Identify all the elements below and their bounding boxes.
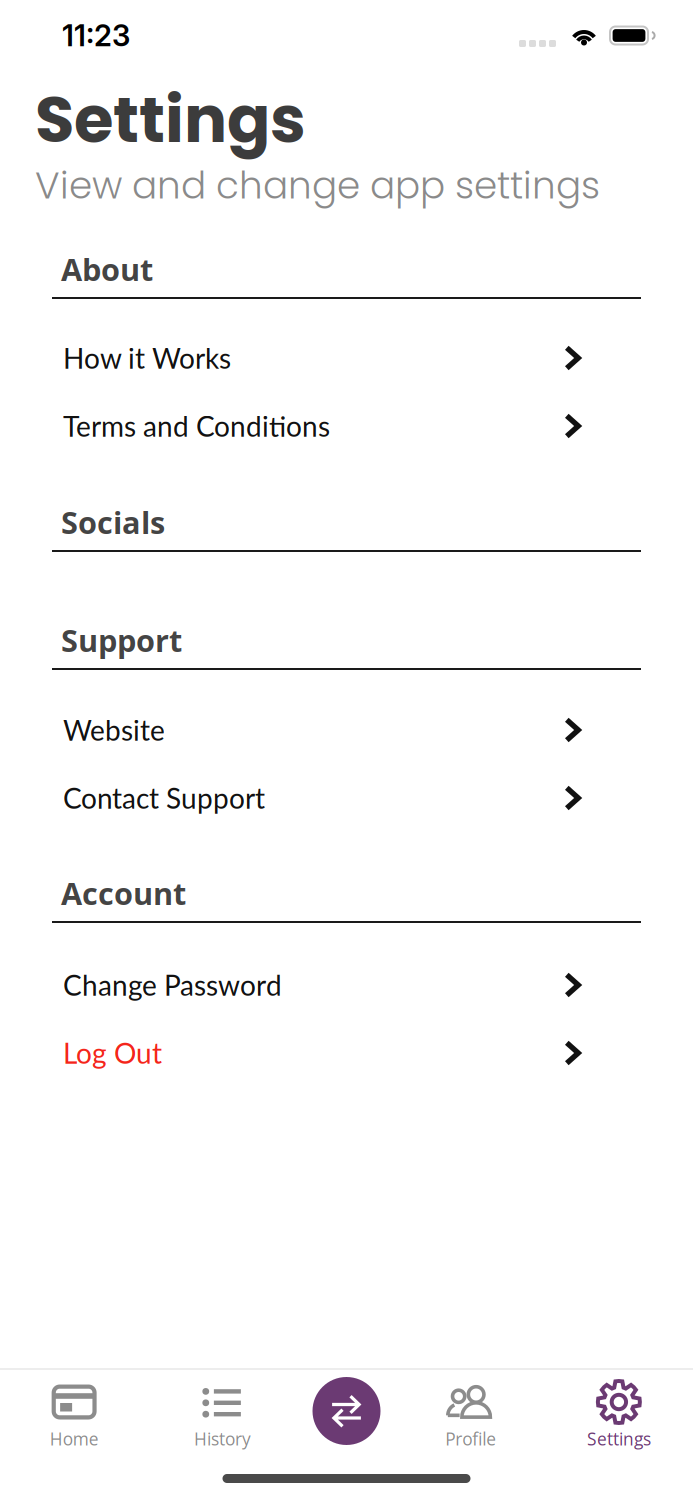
staticText: Profile — [445, 1427, 496, 1451]
button[interactable]: Change Password — [52, 951, 641, 1019]
staticText: History — [194, 1427, 251, 1451]
button[interactable]: History — [148, 1370, 296, 1452]
button[interactable]: How it Works — [52, 324, 641, 392]
staticText: 11:23 — [62, 18, 130, 53]
staticText: Change Password — [63, 968, 282, 1002]
button[interactable]: Terms and Conditions — [52, 392, 641, 460]
button[interactable]: Settings — [545, 1370, 693, 1452]
staticText: Socials — [61, 501, 165, 543]
staticText: Account — [61, 872, 186, 914]
button[interactable]: Contact Support — [52, 764, 641, 832]
staticText: Terms and Conditions — [63, 409, 330, 443]
button[interactable]: Website — [52, 696, 641, 764]
staticText: Settings — [35, 75, 306, 164]
staticText: Home — [50, 1427, 99, 1451]
staticText: Settings — [587, 1427, 651, 1451]
staticText: About — [61, 248, 153, 290]
button[interactable]: Transfer — [296, 1370, 396, 1452]
staticText: Support — [61, 619, 182, 661]
staticText: How it Works — [63, 341, 231, 375]
button[interactable]: Home — [0, 1370, 148, 1452]
staticText: Website — [63, 713, 165, 747]
button[interactable]: Log Out — [52, 1019, 641, 1087]
button[interactable]: Profile — [396, 1370, 545, 1452]
staticText: Log Out — [63, 1036, 162, 1070]
staticText: View and change app settings — [35, 159, 600, 212]
staticText: Contact Support — [63, 781, 265, 815]
